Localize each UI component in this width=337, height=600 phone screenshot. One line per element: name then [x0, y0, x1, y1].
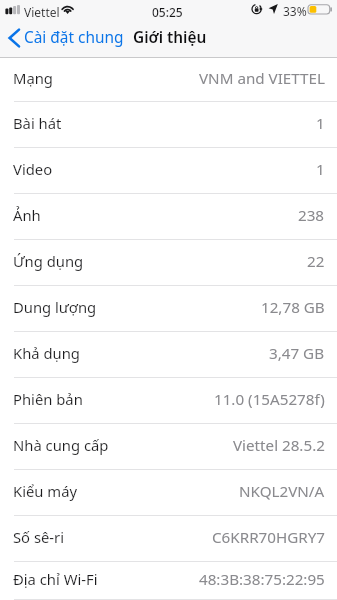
staticText: 33% [283, 3, 307, 19]
button[interactable]: Địa chỉ Wi-Fi [0, 562, 337, 600]
staticText: Số sê-ri [13, 527, 65, 547]
staticText: Bài hát [13, 113, 62, 133]
staticText: 3,47 GB [269, 343, 325, 364]
staticText: Địa chỉ Wi-Fi [13, 569, 98, 589]
staticText: 1 [316, 113, 325, 134]
staticText: Kiểu máy [13, 481, 77, 501]
staticText: Mạng [13, 68, 53, 88]
button[interactable]: Mạng [0, 58, 337, 102]
staticText: 05:25 [152, 4, 183, 20]
staticText: VNM and VIETTEL [199, 68, 325, 89]
staticText: NKQL2VN/A [239, 481, 325, 502]
staticText: 1 [316, 159, 325, 180]
staticText: 238 [298, 205, 325, 226]
button[interactable]: Phiên bản [0, 378, 337, 424]
staticText: Cài đặt chung [24, 27, 124, 48]
button[interactable]: Video [0, 148, 337, 194]
button[interactable]: Ứng dụng [0, 240, 337, 286]
button[interactable]: Nhà cung cấp [0, 424, 337, 470]
staticText: Phiên bản [13, 389, 83, 409]
staticText: Dung lượng [13, 297, 97, 317]
button[interactable]: Bài hát [0, 102, 337, 148]
staticText: Khả dụng [13, 343, 80, 363]
staticText: Giới thiệu [133, 27, 207, 48]
staticText: 11.0 (15A5278f) [214, 389, 325, 410]
staticText: 48:3B:38:75:22:95 [199, 569, 325, 590]
button[interactable]: Khả dụng [0, 332, 337, 378]
staticText: Ứng dụng [13, 251, 84, 271]
button[interactable]: Kiểu máy [0, 470, 337, 516]
staticText: 12,78 GB [261, 297, 325, 318]
staticText: Nhà cung cấp [13, 435, 109, 455]
staticText: Viettel 28.5.2 [233, 435, 325, 456]
staticText: 22 [307, 251, 325, 272]
staticText: C6KRR70HGRY7 [212, 527, 325, 548]
button[interactable]: Dung lượng [0, 286, 337, 332]
staticText: Viettel [24, 4, 60, 20]
button[interactable]: Cài đặt chung [0, 25, 130, 54]
button[interactable]: Số sê-ri [0, 516, 337, 562]
button[interactable]: Ảnh [0, 194, 337, 240]
staticText: Video [13, 159, 53, 179]
staticText: Ảnh [13, 205, 41, 225]
